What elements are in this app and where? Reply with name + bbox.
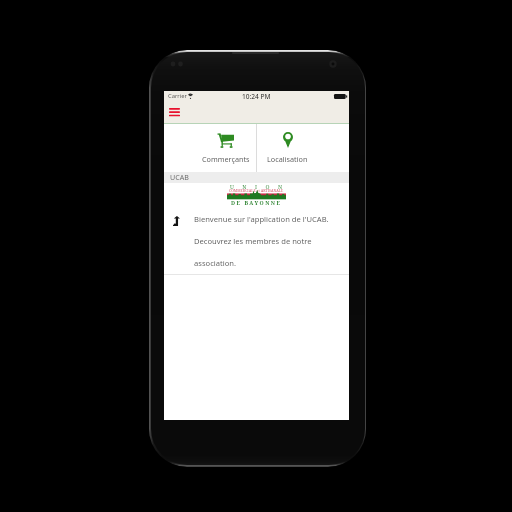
- staticText: Localisation: [267, 154, 308, 164]
- button[interactable]: Bienvenue sur l'application de l'UCAB. D…: [164, 205, 349, 274]
- staticText: UCAB: [170, 172, 189, 182]
- staticText: Carrier: [168, 92, 187, 100]
- staticText: Commerçants: [202, 154, 250, 164]
- button[interactable]: Localisation: [257, 124, 318, 172]
- button[interactable]: Commerçants: [195, 124, 256, 172]
- staticText: Bienvenue sur l'application de l'UCAB. D…: [194, 214, 343, 269]
- staticText: 10:24 PM: [242, 92, 271, 101]
- staticText: DE BAYONNE: [231, 199, 282, 206]
- staticText: U N I O N: [230, 183, 284, 190]
- button[interactable]: Menu: [164, 103, 182, 121]
- staticText: COMMERCIALE et ARTISANALE: [229, 188, 284, 193]
